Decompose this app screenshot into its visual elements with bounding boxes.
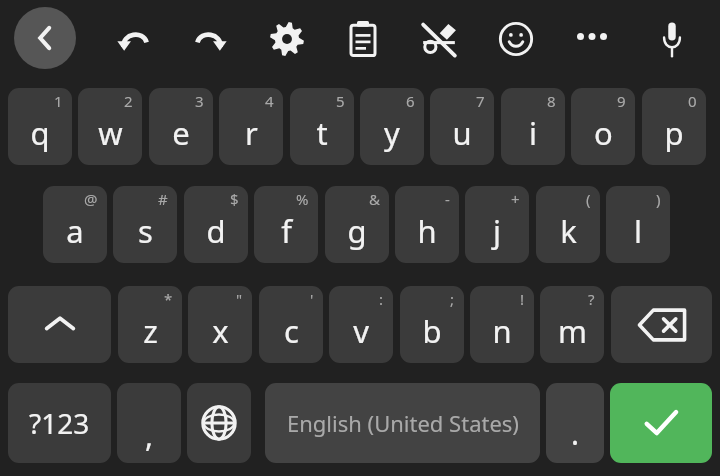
button[interactable]: 2 [78,88,142,165]
staticText: l [634,210,642,252]
staticText: q [30,112,50,154]
button[interactable]: @ [43,186,107,263]
button[interactable]: 8 [501,88,565,165]
button[interactable]: & [325,186,389,263]
button[interactable]: Clipboard [332,7,394,71]
staticText: 2 [124,91,133,111]
staticText: t [316,112,328,154]
staticText: n [492,310,512,352]
button[interactable]: More options [561,19,623,54]
staticText: $ [230,189,239,209]
button[interactable]: ! [470,286,534,363]
staticText: s [138,210,153,252]
staticText: c [284,310,299,352]
staticText: : [379,289,384,309]
staticText: " [236,289,243,309]
button[interactable]: 4 [219,88,283,165]
staticText: w [98,112,123,154]
staticText: x [212,310,229,352]
staticText: y [384,112,400,154]
staticText: u [452,112,472,154]
button[interactable]: Shift [8,286,111,363]
staticText: 8 [547,91,556,111]
staticText: * [164,289,173,309]
button[interactable]: + [465,186,529,263]
staticText: - [445,189,450,209]
staticText: % [296,189,309,209]
staticText: 0 [688,91,697,111]
button[interactable]: Backspace [611,286,712,363]
button[interactable]: Redo [178,11,244,67]
staticText: j [493,210,501,252]
button[interactable]: 1 [8,88,72,165]
staticText: 3 [195,91,204,111]
staticText: , [145,415,154,456]
button[interactable]: 0 [642,88,706,165]
button[interactable]: ( [536,186,600,263]
staticText: & [369,189,380,209]
button[interactable]: 3 [149,88,213,165]
button[interactable]: Emoji [483,8,549,70]
button[interactable]: Handwriting off [405,7,473,71]
staticText: # [158,189,168,209]
button[interactable]: % [254,186,318,263]
staticText: r [245,112,258,154]
button[interactable]: ?123 [8,383,111,463]
staticText: k [560,210,577,252]
staticText: d [206,210,226,252]
staticText: ?123 [29,404,90,442]
staticText: z [143,310,158,352]
staticText: ; [450,289,455,309]
staticText: ( [586,189,591,209]
staticText: p [664,112,684,154]
staticText: a [66,210,84,252]
staticText: @ [84,189,98,209]
staticText: . [571,413,580,454]
staticText: f [281,210,292,252]
button[interactable]: ? [540,286,604,363]
staticText: v [353,310,369,352]
button[interactable]: # [113,186,177,263]
button[interactable]: 7 [430,88,494,165]
staticText: i [529,112,537,154]
staticText: ) [656,189,661,209]
button[interactable]: 5 [290,88,354,165]
staticText: 5 [336,91,345,111]
button[interactable]: English (United States) [265,383,540,463]
staticText: g [347,210,367,252]
staticText: 6 [406,91,415,111]
staticText: h [417,210,437,252]
button[interactable]: , [117,383,181,463]
button[interactable]: * [118,286,182,363]
staticText: 4 [265,91,274,111]
button[interactable]: 6 [360,88,424,165]
button[interactable]: Settings [254,8,320,70]
staticText: ? [588,289,595,309]
button[interactable]: ) [606,186,670,263]
button[interactable]: Back [14,7,76,69]
button[interactable]: Voice input [645,7,699,71]
button[interactable]: ' [259,286,323,363]
staticText: English (United States) [287,408,519,438]
button[interactable]: : [329,286,393,363]
staticText: + [511,189,520,209]
staticText: 9 [617,91,626,111]
staticText: ! [520,289,525,309]
staticText: b [422,310,442,352]
button[interactable]: Undo [100,11,166,67]
staticText: ' [310,289,314,309]
button[interactable]: - [395,186,459,263]
button[interactable]: ; [400,286,464,363]
staticText: 7 [476,91,485,111]
staticText: o [594,112,613,154]
staticText: 1 [54,91,63,111]
button[interactable]: . [546,383,604,463]
button[interactable]: Switch language [187,383,251,463]
staticText: m [558,310,587,352]
staticText: e [172,112,190,154]
button[interactable]: Enter [610,383,712,463]
button[interactable]: $ [184,186,248,263]
button[interactable]: 9 [571,88,635,165]
button[interactable]: " [188,286,252,363]
